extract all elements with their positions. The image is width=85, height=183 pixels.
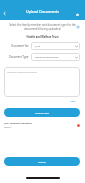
staticText: JANE bbox=[35, 45, 75, 48]
staticText: JANE - Important Information bbox=[4, 122, 32, 125]
button[interactable]: Submit bbox=[4, 157, 80, 166]
button[interactable]: Attaching requested documents bbox=[4, 67, 80, 97]
staticText: Document for: bbox=[0, 44, 29, 48]
staticText: Document Type: bbox=[0, 55, 29, 59]
staticText: Choose Files bbox=[35, 111, 49, 114]
staticText: Select the family member and document ty… bbox=[5, 23, 80, 31]
staticText: Important Information bbox=[35, 56, 75, 59]
staticText: Health and Welfare Trust bbox=[0, 35, 85, 39]
button[interactable]: Help bbox=[75, 24, 81, 30]
button[interactable]: Choose Files bbox=[4, 108, 80, 117]
button[interactable]: Back bbox=[1, 10, 8, 17]
button[interactable]: Home bbox=[74, 11, 81, 18]
staticText: EdForms bbox=[4, 126, 12, 128]
button[interactable]: JANE bbox=[31, 42, 80, 50]
staticText: Upload Documents bbox=[26, 9, 59, 14]
staticText: Submit bbox=[38, 160, 46, 163]
staticText: Attaching requested documents bbox=[7, 71, 38, 74]
button[interactable]: Important Information bbox=[31, 53, 80, 61]
button[interactable]: Clear bbox=[69, 99, 77, 104]
button[interactable]: Delete file bbox=[76, 123, 81, 128]
